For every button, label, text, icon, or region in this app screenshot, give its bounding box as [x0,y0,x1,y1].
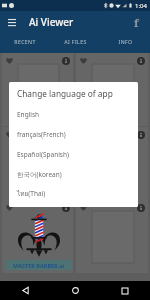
button[interactable]: Back [0,281,50,300]
staticText: Change language of app [17,88,113,99]
button[interactable]: Open navigation menu [1,11,22,32]
button[interactable]: AI FILES [50,32,100,53]
staticText: français(French) [17,130,66,139]
button[interactable]: MASTER BARBER.ai [2,200,73,273]
button[interactable] [76,53,148,126]
staticText: AI FILES [64,38,87,45]
button[interactable]: Recent apps [100,281,150,300]
button[interactable]: Español(Spanish) [9,144,138,164]
staticText: Español(Spanish) [17,150,69,159]
staticText: f [134,15,139,30]
staticText: 1:04 [135,2,147,10]
button[interactable]: ไทย(Thai) [9,184,138,204]
button[interactable]: RECENT [0,32,50,53]
button[interactable] [76,127,148,200]
staticText: INFO [118,38,133,45]
button[interactable]: INFO [100,32,150,53]
staticText: 한국어(korean) [17,170,62,179]
button[interactable]: français(French) [9,124,138,144]
button[interactable] [2,53,73,126]
button[interactable] [2,127,73,200]
button[interactable]: English [9,104,138,124]
button[interactable]: Facebook [126,12,146,32]
staticText: ไทย(Thai) [17,189,46,199]
button[interactable] [76,200,148,273]
staticText: MASTER BARBER.ai [13,262,65,269]
button[interactable]: 한국어(korean) [9,164,138,184]
staticText: Ai Viewer [29,15,74,29]
button[interactable]: Home [50,281,100,300]
staticText: English [17,110,40,119]
staticText: RECENT [14,38,36,45]
